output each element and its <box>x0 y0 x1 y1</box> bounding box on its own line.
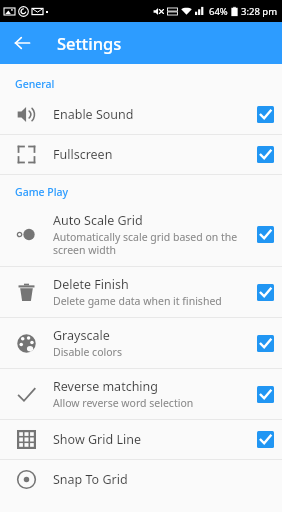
staticText: Allow reverse word selection <box>53 396 194 410</box>
button[interactable]: Fullscreen <box>0 135 282 174</box>
button[interactable]: Auto Scale Grid <box>0 203 282 266</box>
button[interactable]: Back <box>6 27 38 59</box>
other: Enabled <box>257 335 274 352</box>
staticText: 64% <box>209 5 228 18</box>
staticText: Delete game data when it finished <box>53 294 222 308</box>
other: Enabled <box>257 226 274 243</box>
staticText: Snap To Grid <box>53 471 128 488</box>
staticText: Disable colors <box>53 345 122 359</box>
button[interactable]: Grayscale <box>0 318 282 368</box>
other: Enabled <box>257 386 274 403</box>
staticText: General <box>15 77 55 91</box>
other: Enabled <box>257 431 274 448</box>
other: Enabled <box>257 146 274 163</box>
staticText: Game Play <box>15 185 69 199</box>
staticText: Reverse matching <box>53 378 159 395</box>
staticText: 3:28 pm <box>241 5 278 18</box>
staticText: Settings <box>57 32 122 54</box>
staticText: Enable Sound <box>53 106 134 123</box>
other: Enabled <box>257 106 274 123</box>
staticText: Grayscale <box>53 327 110 344</box>
staticText: Show Grid Line <box>53 431 141 448</box>
staticText: Automatically scale grid based on the sc… <box>53 230 241 257</box>
staticText: Delete Finish <box>53 276 129 293</box>
staticText: Auto Scale Grid <box>53 212 143 229</box>
button[interactable]: Snap To Grid <box>0 460 282 499</box>
button[interactable]: Delete Finish <box>0 267 282 317</box>
button[interactable]: Enable Sound <box>0 95 282 134</box>
other: Enabled <box>257 284 274 301</box>
button[interactable]: Show Grid Line <box>0 420 282 459</box>
button[interactable]: Reverse matching <box>0 369 282 419</box>
staticText: Fullscreen <box>53 146 113 163</box>
